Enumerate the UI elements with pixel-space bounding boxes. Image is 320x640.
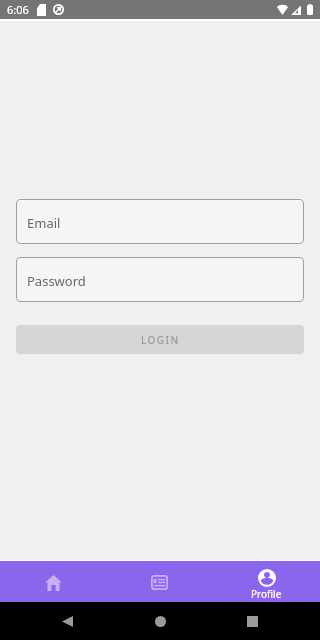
staticText: LOGIN: [141, 333, 180, 347]
button[interactable]: Profile: [213, 561, 320, 602]
button[interactable]: Home: [0, 561, 106, 602]
button[interactable]: LOGIN: [16, 325, 304, 354]
button[interactable]: Back: [46, 602, 88, 640]
button[interactable]: Home: [139, 602, 181, 640]
button[interactable]: Recents: [231, 602, 273, 640]
button[interactable]: Email: [16, 199, 304, 244]
staticText: Profile: [251, 587, 282, 601]
staticText: Password: [27, 272, 86, 290]
button[interactable]: Password: [16, 257, 304, 302]
staticText: 6:06: [7, 2, 29, 17]
button[interactable]: Feed: [106, 561, 213, 602]
staticText: Email: [27, 214, 61, 232]
